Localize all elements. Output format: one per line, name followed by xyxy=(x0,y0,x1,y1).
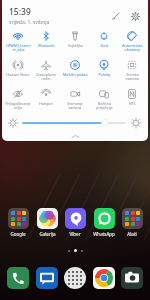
staticText: Bluetooth xyxy=(38,43,55,48)
staticText: Alati xyxy=(127,231,137,237)
button[interactable]: Alati xyxy=(118,208,146,237)
button[interactable]: Automatsko okretanje xyxy=(118,29,146,58)
staticText: Snimka zaslona xyxy=(126,72,139,82)
button[interactable]: Snimanje zaslona xyxy=(61,87,89,116)
button[interactable]: Položaj xyxy=(90,58,118,87)
button[interactable]: Hotspot xyxy=(32,87,60,116)
button[interactable]: Huawei Share xyxy=(4,58,32,87)
staticText: 15:39 xyxy=(9,6,31,18)
button[interactable]: Chrome xyxy=(90,264,118,292)
button[interactable]: Google xyxy=(4,208,32,237)
button[interactable]: Sklopi xyxy=(2,132,148,141)
button[interactable]: Svjetiljka xyxy=(61,29,89,58)
staticText: Bežična projekcija xyxy=(96,101,113,111)
staticText: srijeda, 1. svibnja xyxy=(9,19,50,26)
staticText: Galerija xyxy=(39,231,56,237)
button[interactable]: Kamera xyxy=(118,264,146,292)
button[interactable]: OPASKI_Intern et_plus xyxy=(4,29,32,58)
button[interactable]: Mobilni podaci xyxy=(61,58,89,87)
button[interactable]: Automatska svjetlina xyxy=(131,118,141,128)
staticText: Mobilni podaci xyxy=(63,72,88,77)
button[interactable]: Telefon xyxy=(4,264,32,292)
button[interactable]: Prilagođavanje očiju xyxy=(4,87,32,116)
button[interactable]: Bežična projekcija xyxy=(90,87,118,116)
staticText: Prilagođavanje očiju xyxy=(5,101,31,111)
button[interactable]: Poruke xyxy=(33,264,61,292)
button[interactable]: WhatsApp xyxy=(90,208,118,237)
staticText: Automatsko okretanje xyxy=(122,43,143,53)
staticText: Viber xyxy=(69,231,81,237)
staticText: Zvuk xyxy=(100,43,109,48)
staticText: Google xyxy=(10,231,26,237)
button[interactable]: Svjetlina xyxy=(23,117,125,129)
staticText: Položaj xyxy=(98,72,111,77)
staticText: NFC xyxy=(129,101,136,106)
button[interactable]: Bluetooth xyxy=(32,29,60,58)
staticText: WhatsApp xyxy=(93,231,115,237)
button[interactable]: Zrakoplovni način xyxy=(32,58,60,87)
staticText: Zrakoplovni način xyxy=(36,72,56,82)
button[interactable]: Snimka zaslona xyxy=(118,58,146,87)
staticText: OPASKI_Intern et_plus xyxy=(6,43,31,53)
button[interactable]: Postavke xyxy=(128,9,142,23)
button[interactable]: Viber xyxy=(61,208,89,237)
staticText: Snimanje zaslona xyxy=(67,101,83,111)
staticText: Huawei Share xyxy=(6,72,30,77)
button[interactable]: NFC xyxy=(118,87,146,116)
staticText: Hotspot xyxy=(39,101,53,106)
button[interactable]: Aplikacije xyxy=(61,264,89,292)
staticText: Svjetiljka xyxy=(68,43,83,48)
button[interactable]: Galerija xyxy=(33,208,61,237)
button[interactable]: Zvuk xyxy=(90,29,118,58)
button[interactable]: Uredi xyxy=(109,9,123,23)
